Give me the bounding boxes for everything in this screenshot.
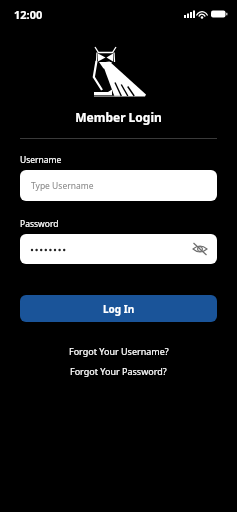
button[interactable]: Log In — [20, 295, 217, 322]
staticText: 12:00 — [14, 7, 43, 22]
staticText: Member Login — [0, 109, 237, 125]
staticText: Forgot Your Password? — [70, 365, 167, 377]
staticText: Log In — [103, 302, 135, 316]
staticText: Username — [20, 154, 62, 166]
staticText: Forgot Your Username? — [69, 345, 169, 357]
button[interactable]: Type Username — [20, 170, 217, 201]
staticText: Type Username — [31, 180, 94, 192]
button[interactable]: Forgot Your Password? — [70, 365, 167, 377]
button[interactable] — [20, 234, 217, 264]
button[interactable]: Forgot Your Username? — [69, 345, 169, 357]
staticText: Password — [20, 218, 59, 230]
